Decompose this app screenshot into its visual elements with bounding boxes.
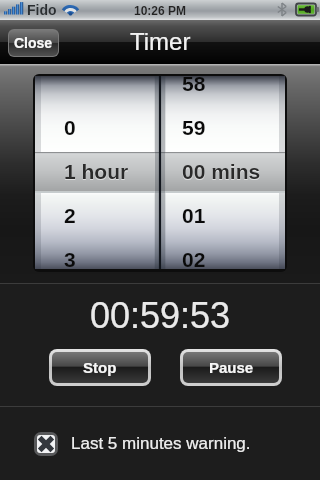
staticText: 0: [64, 116, 76, 139]
staticText: Timer: [130, 28, 191, 55]
button[interactable]: Pause: [183, 352, 279, 383]
staticText: 02: [182, 248, 206, 271]
staticText: Stop: [83, 359, 117, 376]
button[interactable]: Last 5 minutes warning.: [0, 407, 320, 480]
staticText: 3: [64, 248, 76, 271]
staticText: Pause: [209, 359, 254, 376]
staticText: Last 5 minutes warning.: [71, 434, 251, 453]
button[interactable]: Close: [9, 30, 58, 56]
button[interactable]: Stop: [52, 352, 148, 383]
staticText: Fido: [27, 2, 57, 18]
staticText: 1 hour: [64, 161, 129, 184]
staticText: 00:59:53: [90, 295, 231, 335]
button[interactable]: 58: [35, 76, 285, 269]
staticText: 59: [182, 116, 206, 139]
staticText: 10:26 PM: [134, 4, 187, 17]
staticText: 00 mins: [182, 160, 261, 183]
staticText: 1 hour: [64, 160, 129, 183]
staticText: Close: [14, 35, 53, 51]
staticText: 01: [182, 204, 206, 227]
staticText: 58: [182, 74, 206, 95]
staticText: 2: [64, 204, 76, 227]
staticText: 00 mins: [182, 161, 261, 184]
